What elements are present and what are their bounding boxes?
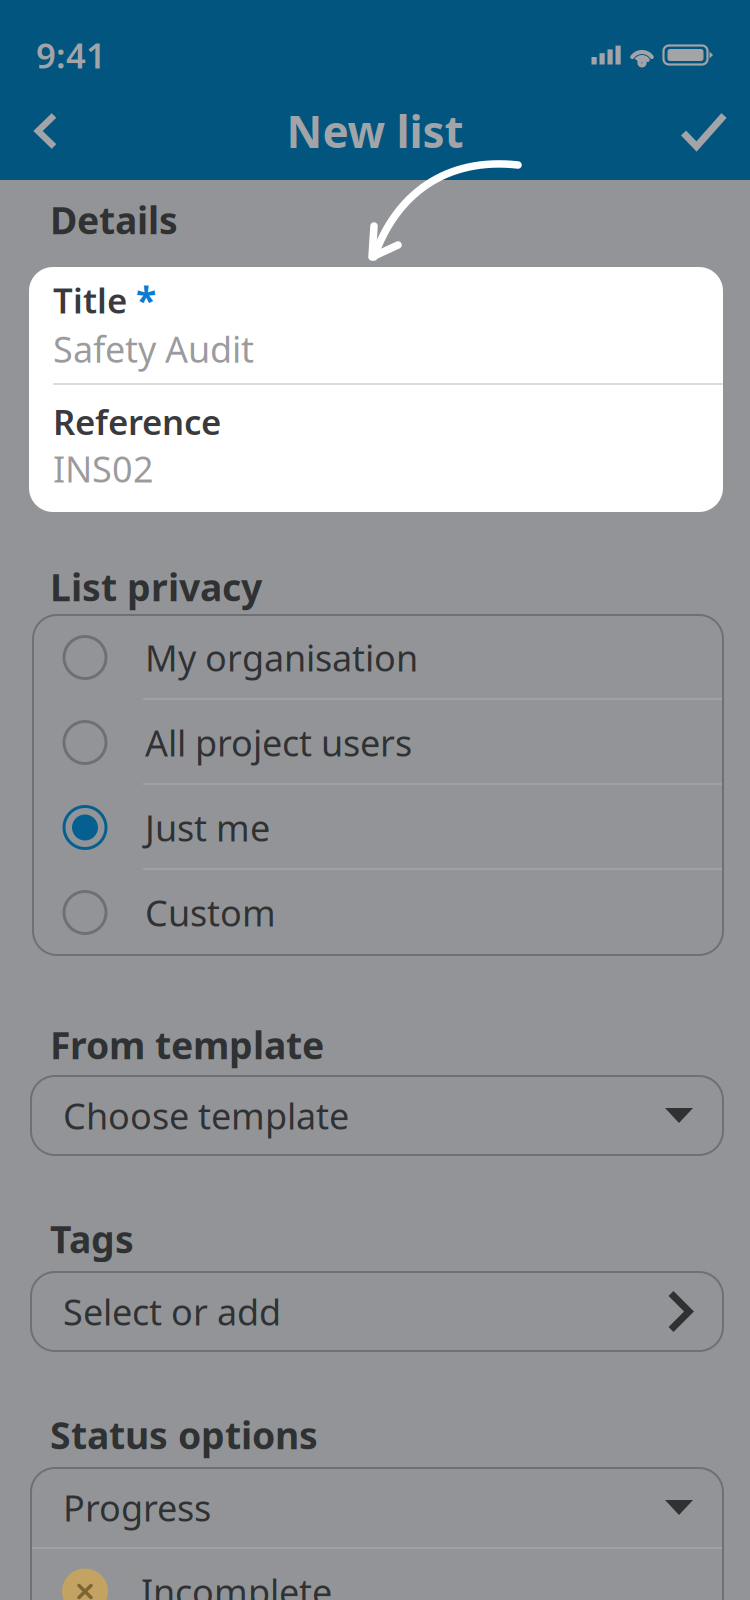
button[interactable]: Choose template <box>31 1076 723 1155</box>
button[interactable]: Save <box>658 96 750 166</box>
staticText: My organisation <box>145 634 418 681</box>
staticText: Title <box>53 277 127 323</box>
staticText: All project users <box>145 719 412 766</box>
button[interactable]: Reference <box>29 385 723 512</box>
button[interactable]: Custom <box>33 870 723 955</box>
staticText: Choose template <box>63 1092 349 1139</box>
staticText: From template <box>50 1020 324 1070</box>
staticText: Reference <box>53 399 221 445</box>
staticText: * <box>136 275 156 325</box>
staticText: 9:41 <box>36 32 106 78</box>
staticText: Status options <box>50 1410 318 1460</box>
button[interactable]: Title <box>29 267 723 383</box>
staticText: Safety Audit <box>53 325 254 373</box>
staticText: Progress <box>63 1484 211 1531</box>
button[interactable]: My organisation <box>33 615 723 700</box>
button[interactable]: Select or add <box>31 1272 723 1351</box>
button[interactable]: Just me <box>33 785 723 870</box>
staticText: List privacy <box>50 562 262 612</box>
staticText: Just me <box>145 804 270 851</box>
staticText: Details <box>50 195 178 245</box>
button[interactable]: All project users <box>33 700 723 785</box>
button[interactable]: Back <box>0 96 92 166</box>
staticText: Incomplete <box>141 1568 332 1600</box>
staticText: Select or add <box>63 1288 281 1335</box>
staticText: New list <box>286 102 463 160</box>
staticText: Tags <box>50 1214 134 1264</box>
staticText: Custom <box>145 889 276 936</box>
button[interactable]: Progress <box>31 1468 723 1547</box>
staticText: INS02 <box>53 445 154 492</box>
